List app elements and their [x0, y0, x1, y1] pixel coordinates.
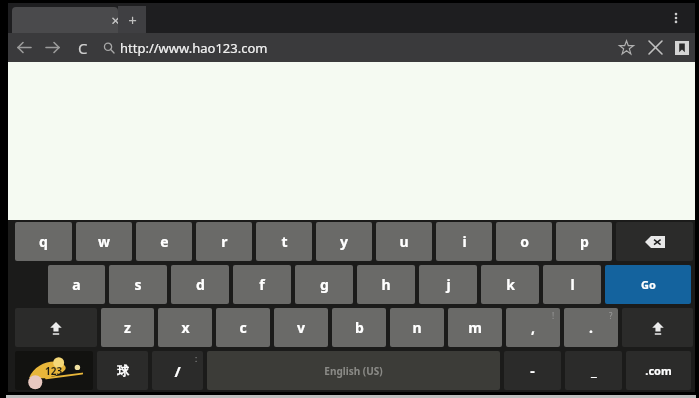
- staticText: +: [128, 10, 137, 30]
- staticText: Go: [641, 277, 656, 292]
- button[interactable]: n: [390, 308, 444, 347]
- button[interactable]: c: [216, 308, 270, 347]
- staticText: h: [381, 275, 391, 294]
- button[interactable]: d: [171, 265, 229, 304]
- staticText: i: [462, 232, 467, 251]
- staticText: j: [446, 275, 451, 294]
- staticText: ,: [531, 318, 535, 337]
- button[interactable]: Close tab: [104, 9, 126, 31]
- button[interactable]: [12, 7, 118, 33]
- staticText: k: [506, 275, 515, 294]
- button[interactable]: l: [543, 265, 601, 304]
- button[interactable]: New tab: [118, 6, 146, 33]
- button[interactable]: ,: [506, 308, 560, 347]
- staticText: .com: [645, 363, 672, 378]
- button[interactable]: s: [109, 265, 167, 304]
- button[interactable]: Language switch: [97, 351, 148, 390]
- button[interactable]: f: [233, 265, 291, 304]
- staticText: ?: [609, 310, 613, 321]
- button[interactable]: Stop loading: [641, 33, 669, 62]
- staticText: http://www.hao123.com: [120, 39, 268, 57]
- staticText: n: [412, 318, 422, 337]
- button[interactable]: More options: [665, 7, 687, 29]
- button[interactable]: Back: [8, 33, 38, 62]
- staticText: u: [399, 232, 409, 251]
- staticText: d: [196, 275, 205, 294]
- button[interactable]: p: [556, 222, 612, 261]
- button[interactable]: Bookmarks: [669, 33, 695, 62]
- staticText: y: [340, 232, 348, 251]
- button[interactable]: y: [316, 222, 372, 261]
- staticText: .: [589, 318, 593, 337]
- button[interactable]: Forward: [38, 33, 68, 62]
- button[interactable]: j: [419, 265, 477, 304]
- button[interactable]: Backspace: [616, 222, 693, 261]
- staticText: l: [570, 275, 575, 294]
- button[interactable]: w: [76, 222, 132, 261]
- button[interactable]: e: [136, 222, 192, 261]
- staticText: 123: [45, 364, 63, 378]
- button[interactable]: r: [196, 222, 252, 261]
- staticText: a: [72, 275, 81, 294]
- staticText: e: [160, 232, 169, 251]
- staticText: m: [468, 318, 482, 337]
- button[interactable]: m: [448, 308, 502, 347]
- button[interactable]: Bookmark star: [611, 33, 641, 62]
- staticText: :: [195, 353, 198, 364]
- staticText: p: [580, 232, 589, 251]
- button[interactable]: o: [496, 222, 552, 261]
- button[interactable]: Input method logo: [15, 351, 93, 390]
- button[interactable]: q: [15, 222, 72, 261]
- button[interactable]: Go: [605, 265, 691, 304]
- staticText: w: [98, 232, 110, 251]
- staticText: t: [281, 232, 288, 251]
- button[interactable]: i: [436, 222, 492, 261]
- staticText: o: [520, 232, 529, 251]
- button[interactable]: Shift: [15, 308, 97, 347]
- staticText: f: [259, 275, 265, 294]
- button[interactable]: t: [256, 222, 312, 261]
- staticText: b: [355, 318, 364, 337]
- button[interactable]: g: [295, 265, 353, 304]
- button[interactable]: English (US): [207, 351, 500, 390]
- staticText: !: [552, 310, 555, 321]
- button[interactable]: Shift right: [622, 308, 693, 347]
- button[interactable]: h: [357, 265, 415, 304]
- staticText: x: [181, 318, 190, 337]
- button[interactable]: -: [504, 351, 561, 390]
- staticText: _: [591, 361, 597, 380]
- button[interactable]: x: [158, 308, 212, 347]
- button[interactable]: /: [152, 351, 203, 390]
- button[interactable]: Reload: [68, 33, 98, 62]
- button[interactable]: _: [565, 351, 622, 390]
- button[interactable]: a: [48, 265, 105, 304]
- button[interactable]: z: [101, 308, 154, 347]
- staticText: -: [530, 361, 535, 380]
- staticText: q: [39, 232, 48, 251]
- button[interactable]: http://www.hao123.com: [120, 33, 611, 62]
- staticText: English (US): [324, 364, 383, 378]
- button[interactable]: u: [376, 222, 432, 261]
- button[interactable]: .com: [626, 351, 691, 390]
- staticText: 球: [117, 363, 129, 378]
- button[interactable]: .: [564, 308, 618, 347]
- staticText: v: [297, 318, 305, 337]
- button[interactable]: v: [274, 308, 328, 347]
- staticText: r: [221, 232, 228, 251]
- staticText: C: [78, 38, 88, 58]
- staticText: g: [320, 275, 329, 294]
- button[interactable]: k: [481, 265, 539, 304]
- button[interactable]: b: [332, 308, 386, 347]
- staticText: z: [124, 318, 131, 337]
- staticText: /: [174, 361, 181, 381]
- staticText: s: [134, 275, 142, 294]
- staticText: ×: [111, 10, 120, 30]
- staticText: c: [239, 318, 247, 337]
